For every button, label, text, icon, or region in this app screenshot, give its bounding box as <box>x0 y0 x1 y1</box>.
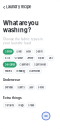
button[interactable]: Socks <box>36 85 45 90</box>
staticText: Denim <box>36 50 43 53</box>
staticText: Wool <box>26 50 31 53</box>
button[interactable]: Delicates <box>3 62 16 67</box>
staticText: Delicates <box>5 63 15 66</box>
button[interactable]: Nylon <box>36 55 45 61</box>
button[interactable]: Denim <box>34 49 44 54</box>
button[interactable]: Everyday <box>3 85 14 90</box>
staticText: Nylon <box>38 57 44 60</box>
button[interactable]: Viscose <box>13 55 24 61</box>
staticText: your laundry load <box>3 42 31 45</box>
staticText: ‹ <box>3 3 5 10</box>
button[interactable]: Mix <box>47 55 54 61</box>
button[interactable]: Back <box>3 3 5 10</box>
staticText: What are you washing? <box>3 20 39 34</box>
staticText: Extra things <box>3 96 22 100</box>
staticText: Towels <box>5 70 12 73</box>
staticText: Socks <box>38 86 44 89</box>
staticText: Jersey <box>27 57 33 60</box>
button[interactable]: Cotton <box>3 49 13 54</box>
staticText: Sports <box>17 86 24 89</box>
button[interactable]: Sports <box>16 85 26 90</box>
staticText: Silk <box>5 57 10 60</box>
staticText: Linen <box>16 50 21 53</box>
button[interactable]: Silk <box>3 55 11 61</box>
button[interactable]: Cashmere <box>18 62 31 67</box>
button[interactable]: Sportswear <box>32 62 48 67</box>
button[interactable]: Bedding <box>15 68 26 74</box>
staticText: Cashmere <box>19 63 29 66</box>
staticText: Mix <box>48 57 52 60</box>
staticText: Underwear <box>3 78 20 82</box>
button[interactable]: Linen <box>15 49 23 54</box>
staticText: Everyday <box>5 86 13 89</box>
button[interactable]: Shoes <box>26 103 36 108</box>
staticText: Sportswear <box>34 63 46 66</box>
staticText: Curtains <box>5 104 14 107</box>
staticText: Rugs <box>18 104 23 107</box>
button[interactable]: Lace <box>27 85 35 90</box>
button[interactable]: Help <box>42 112 50 120</box>
staticText: Choose the fabric types in <box>3 38 43 41</box>
staticText: Laundry recipe <box>6 4 31 9</box>
staticText: Lace <box>29 86 33 89</box>
staticText: Bedding <box>16 70 24 73</box>
button[interactable]: Rugs <box>17 103 25 108</box>
staticText: Cotton <box>5 50 12 53</box>
button[interactable]: Wool <box>24 49 33 54</box>
button[interactable]: Outerwear <box>27 68 42 74</box>
button[interactable]: Towels <box>3 68 13 74</box>
staticText: Viscose <box>14 57 22 60</box>
staticText: Shoes <box>28 104 34 107</box>
button[interactable]: Jersey <box>25 55 35 61</box>
staticText: Outerwear <box>29 70 40 73</box>
button[interactable]: Curtains <box>3 103 15 108</box>
